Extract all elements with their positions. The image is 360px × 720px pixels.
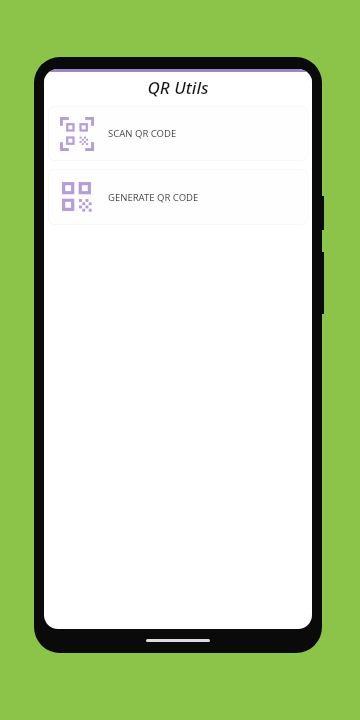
staticText: GENERATE QR CODE — [108, 191, 199, 204]
staticText: SCAN QR CODE — [108, 127, 177, 140]
staticText: QR Utils — [147, 76, 209, 99]
button[interactable]: SCAN QR CODE — [48, 106, 308, 161]
button[interactable]: GENERATE QR CODE — [48, 169, 308, 225]
